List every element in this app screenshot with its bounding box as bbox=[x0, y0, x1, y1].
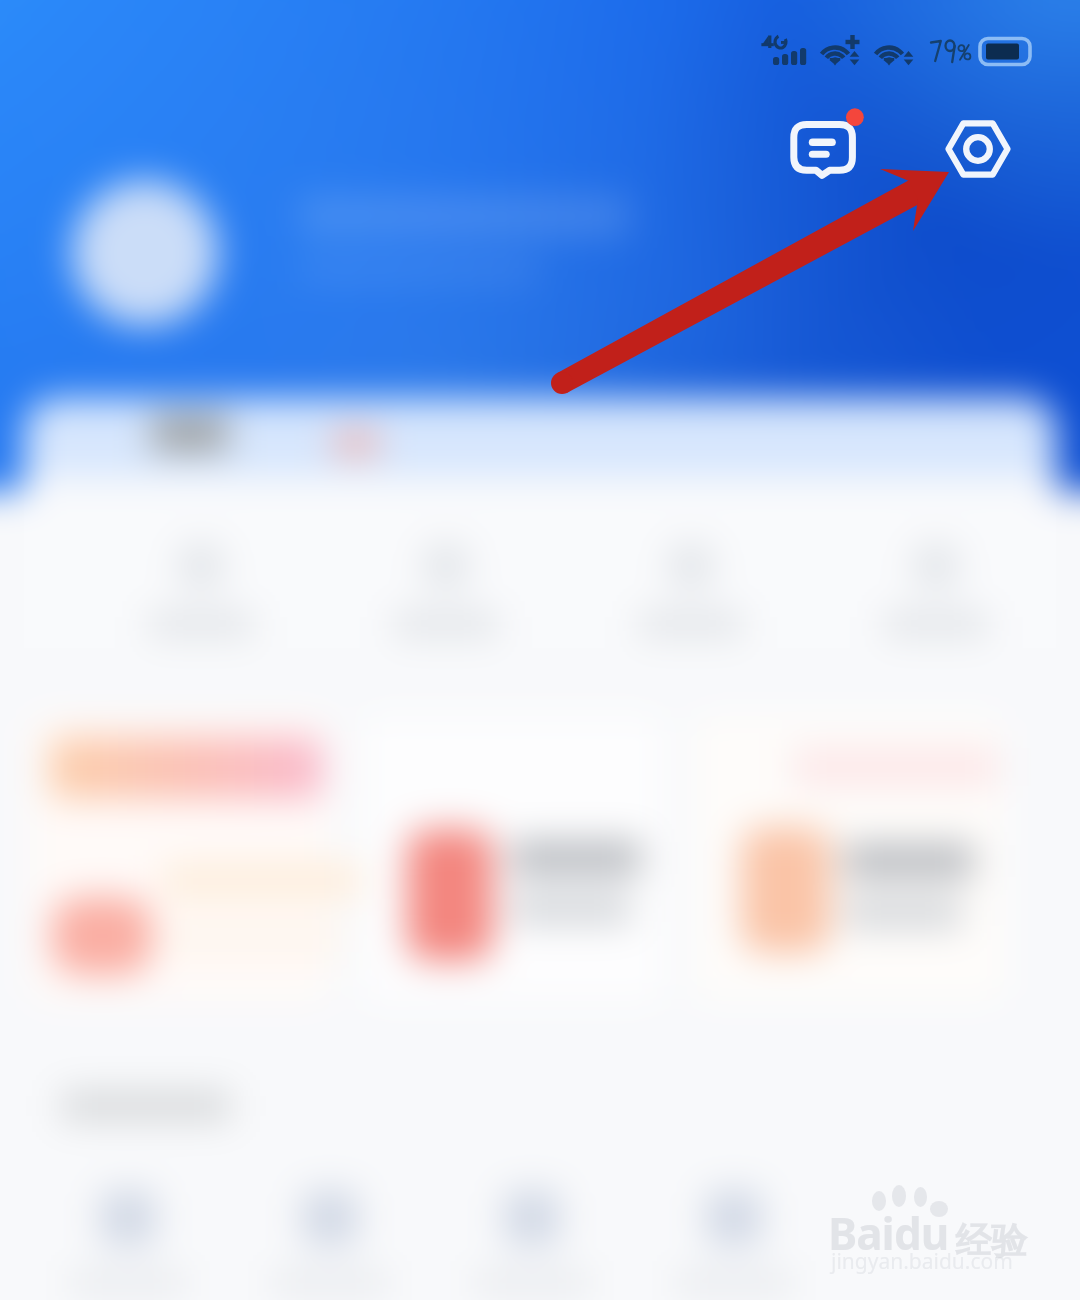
button[interactable]: Orders bbox=[627, 520, 755, 648]
staticText: Bai bbox=[828, 1203, 894, 1263]
button[interactable]: Coupons bbox=[382, 520, 510, 648]
button[interactable]: More bbox=[670, 1174, 798, 1300]
button[interactable]: Daily rewards bbox=[694, 716, 1004, 1001]
button[interactable]: Points bbox=[872, 520, 1000, 648]
button[interactable]: Bills bbox=[468, 1174, 596, 1300]
button[interactable]: Red packet bbox=[362, 716, 662, 1001]
button[interactable]: Transfer bbox=[64, 1174, 192, 1300]
button[interactable]: My wallet bbox=[128, 404, 252, 462]
button[interactable]: Balance bbox=[137, 520, 265, 648]
button[interactable]: Top up bbox=[266, 1174, 394, 1300]
staticText: jingyan.baidu.com bbox=[831, 1247, 1013, 1276]
button[interactable]: Settings bbox=[944, 115, 1012, 183]
button[interactable]: Promotions bbox=[312, 416, 400, 470]
button[interactable]: Member offer bbox=[30, 716, 330, 1001]
button[interactable]: Messages bbox=[782, 108, 866, 192]
staticText: 经验 bbox=[955, 1218, 1027, 1263]
staticText: du bbox=[894, 1203, 949, 1263]
